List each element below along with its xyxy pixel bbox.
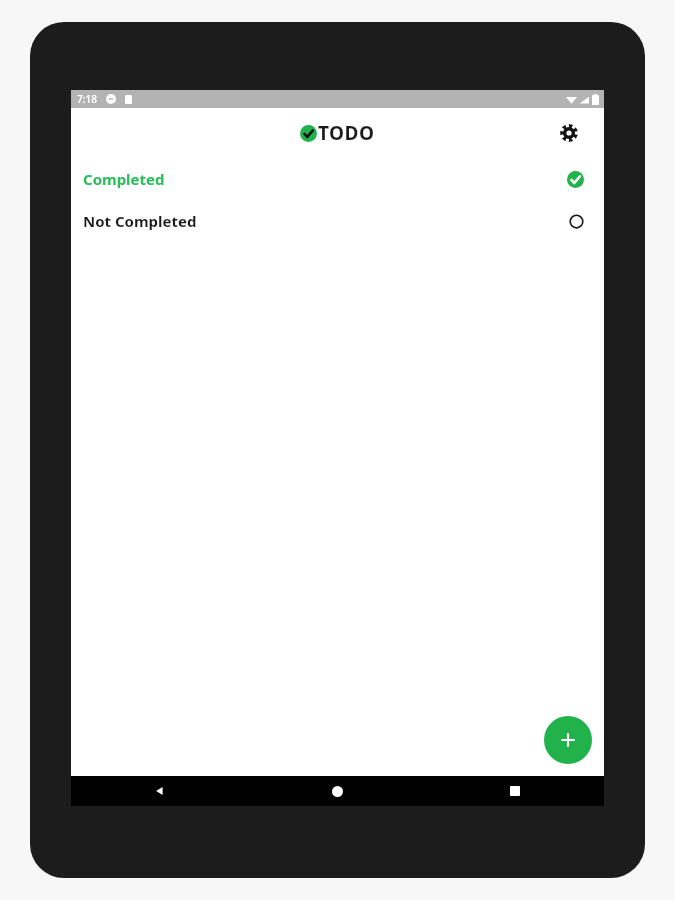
button[interactable]: Completed <box>71 158 604 200</box>
button[interactable]: Settings <box>552 116 586 150</box>
button[interactable]: Back <box>71 776 248 806</box>
button[interactable]: Home <box>248 776 426 806</box>
staticText: TODO <box>318 120 375 146</box>
staticText: Completed <box>83 169 165 189</box>
button[interactable]: Recent apps <box>426 776 604 806</box>
staticText: Not Completed <box>83 211 197 231</box>
button[interactable]: Add task <box>544 716 592 764</box>
staticText: 7:18 <box>77 92 97 106</box>
button[interactable]: Not Completed <box>71 200 604 242</box>
